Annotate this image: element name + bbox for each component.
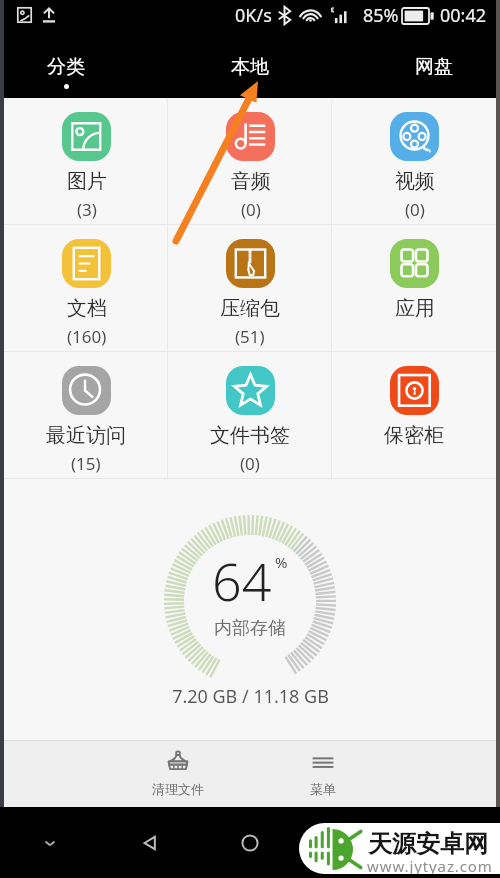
button[interactable]: Hide keyboard bbox=[0, 807, 100, 878]
button[interactable]: 文档 bbox=[4, 225, 168, 351]
staticText: (0) bbox=[240, 452, 260, 475]
staticText: 天源安卓网 bbox=[368, 829, 488, 859]
staticText: 文件书签 bbox=[210, 423, 290, 448]
button[interactable]: 音频 bbox=[168, 98, 332, 224]
button[interactable]: 文件书签 bbox=[168, 352, 332, 478]
button[interactable]: Back bbox=[100, 807, 200, 878]
staticText: (3) bbox=[77, 198, 97, 221]
staticText: 网盘 bbox=[415, 55, 453, 79]
staticText: 分类 bbox=[47, 55, 85, 79]
staticText: (51) bbox=[235, 325, 265, 348]
staticText: 0K/s bbox=[235, 3, 272, 28]
button[interactable]: 压缩包 bbox=[168, 225, 332, 351]
staticText: 压缩包 bbox=[220, 296, 280, 321]
staticText: 文档 bbox=[67, 296, 107, 321]
button[interactable]: 图片 bbox=[4, 98, 168, 224]
button[interactable]: 最近访问 bbox=[4, 352, 168, 478]
staticText: 本地 bbox=[231, 55, 269, 79]
button[interactable]: 保密柜 bbox=[332, 352, 496, 478]
staticText: 最近访问 bbox=[46, 423, 126, 448]
staticText: 内部存储 bbox=[214, 617, 286, 640]
button[interactable]: 视频 bbox=[332, 98, 496, 224]
staticText: 清理文件 bbox=[152, 781, 204, 797]
button[interactable]: Home bbox=[200, 807, 300, 878]
staticText: 85% bbox=[363, 3, 399, 28]
button[interactable]: 应用 bbox=[332, 225, 496, 351]
staticText: (160) bbox=[67, 325, 107, 348]
staticText: 视频 bbox=[395, 169, 435, 194]
button[interactable]: 网盘 bbox=[397, 30, 471, 98]
staticText: 7.20 GB / 11.18 GB bbox=[172, 684, 329, 709]
staticText: 应用 bbox=[395, 296, 435, 321]
staticText: www.jytyaz.com bbox=[367, 856, 493, 874]
staticText: 菜单 bbox=[310, 781, 336, 797]
staticText: 图片 bbox=[67, 169, 107, 194]
button[interactable]: 清理文件 bbox=[105, 741, 250, 807]
staticText: 音频 bbox=[231, 169, 271, 194]
staticText: % bbox=[275, 552, 288, 572]
staticText: (0) bbox=[405, 198, 425, 221]
staticText: 保密柜 bbox=[384, 423, 444, 448]
button[interactable]: 菜单 bbox=[250, 741, 395, 807]
staticText: 00:42 bbox=[440, 3, 487, 28]
button[interactable]: 本地 bbox=[213, 30, 287, 98]
button[interactable]: 分类 bbox=[29, 30, 103, 98]
staticText: 64 bbox=[212, 545, 272, 616]
staticText: (0) bbox=[241, 198, 261, 221]
staticText: (15) bbox=[71, 452, 101, 475]
